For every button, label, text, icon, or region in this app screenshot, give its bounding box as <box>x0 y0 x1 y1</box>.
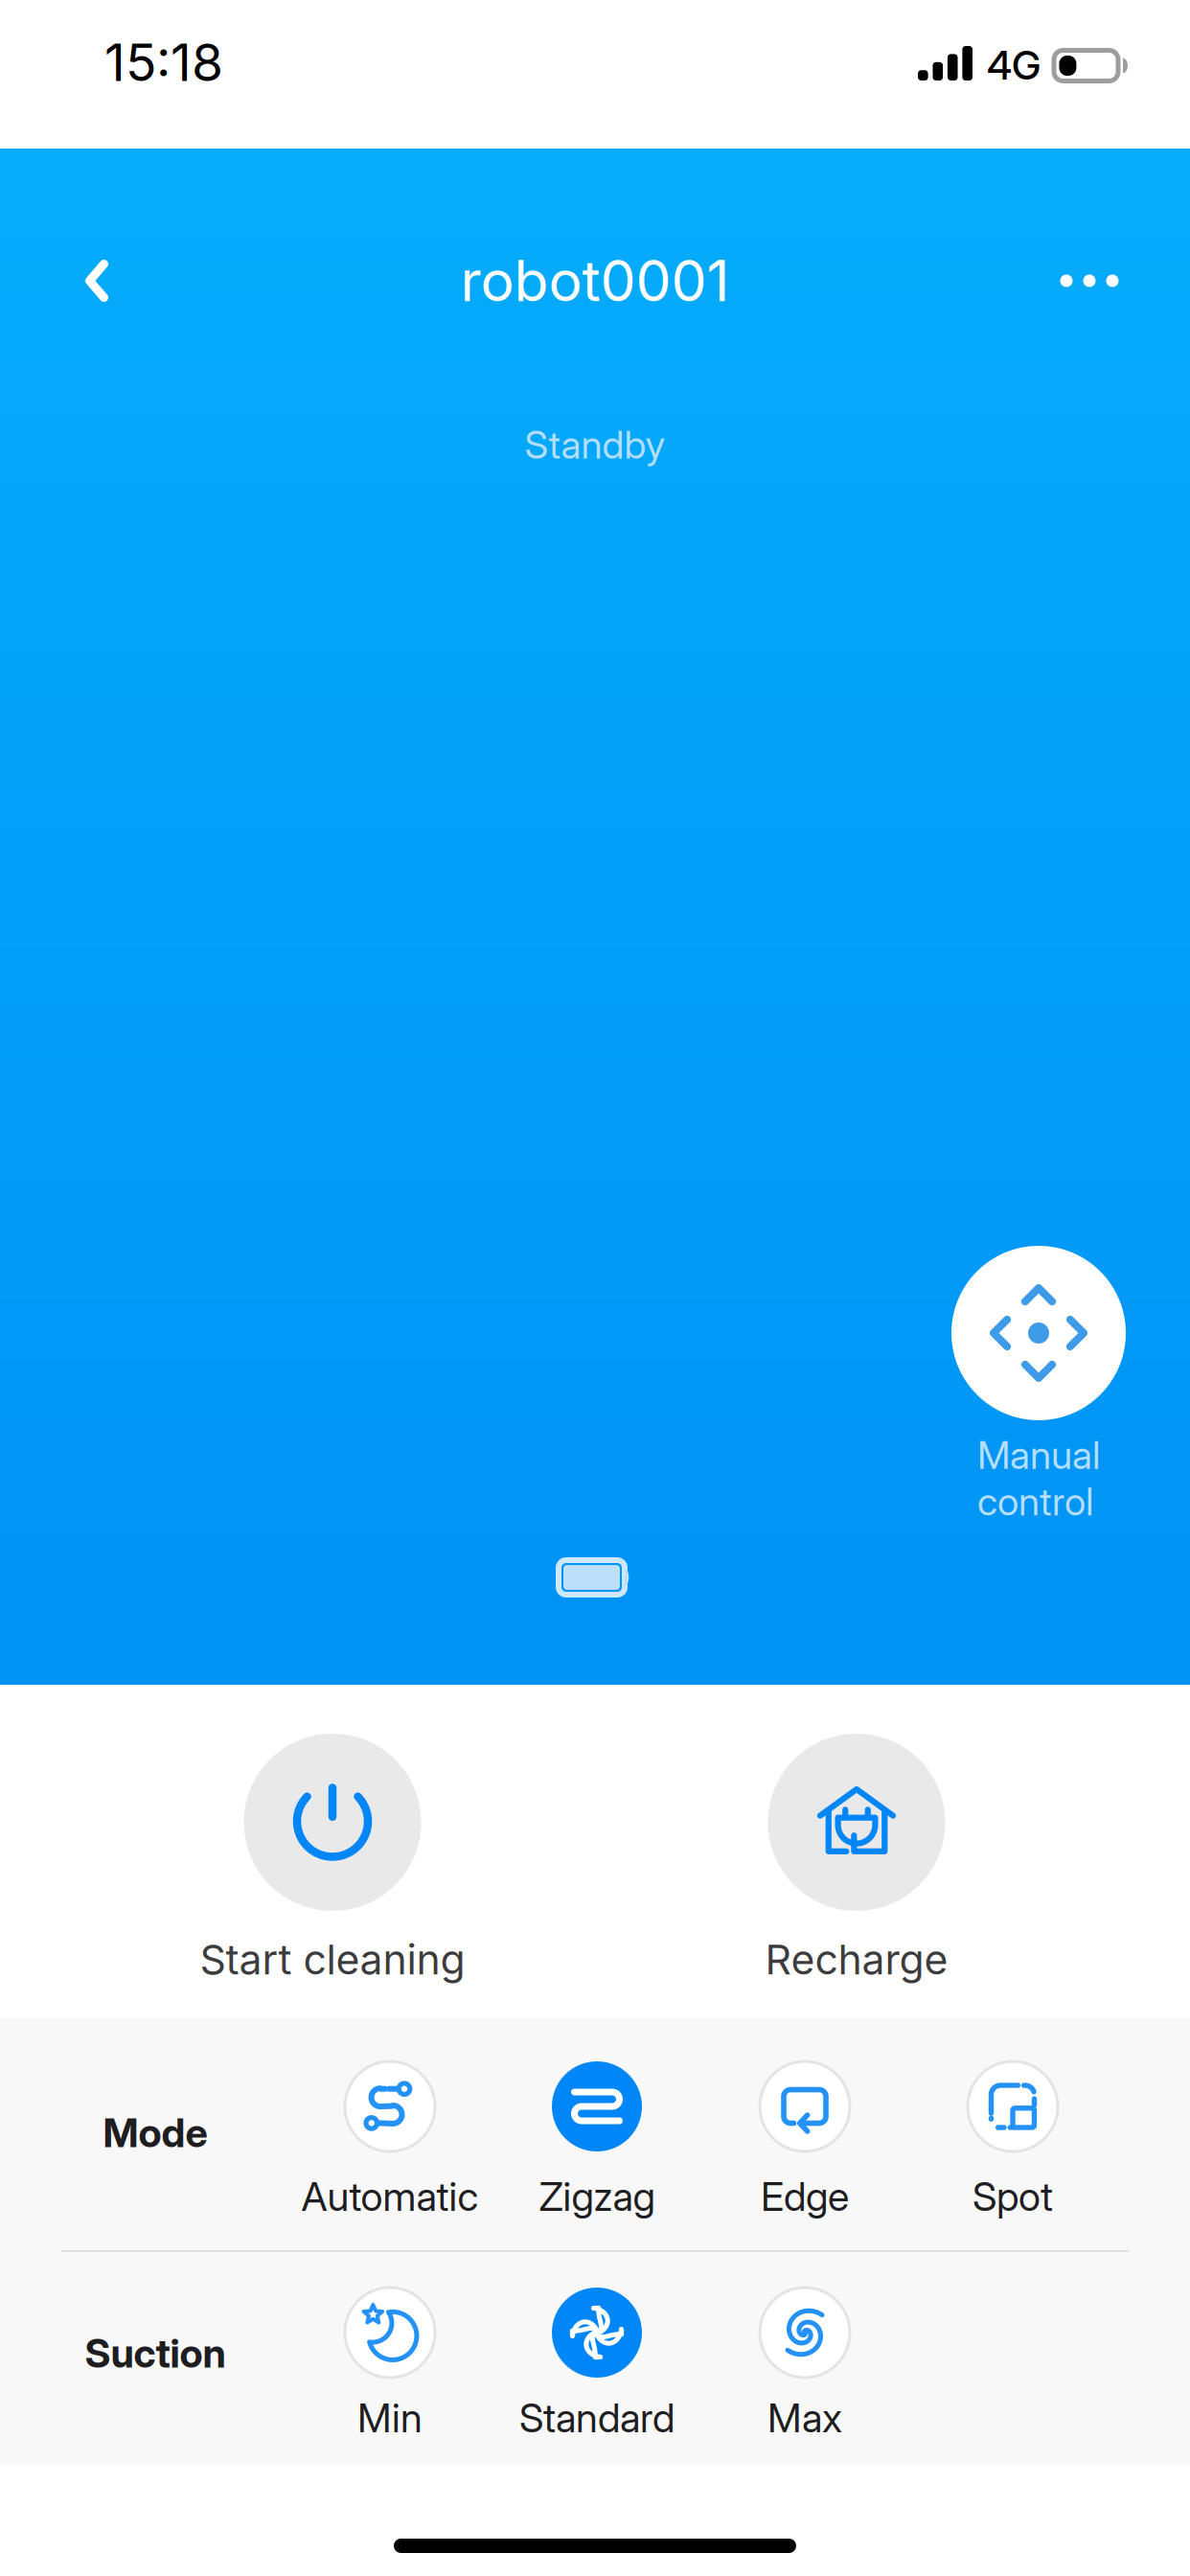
button[interactable]: Spot <box>968 2061 1058 2220</box>
button[interactable]: Manual control <box>921 1246 1156 1525</box>
staticText: Zigzag <box>539 2173 655 2220</box>
button[interactable]: Start cleaning <box>200 1734 465 1984</box>
staticText: Manual control <box>977 1432 1100 1525</box>
staticText: Spot <box>973 2173 1053 2220</box>
staticText: Automatic <box>301 2173 479 2220</box>
staticText: Max <box>767 2394 842 2442</box>
staticText: Min <box>357 2394 423 2442</box>
staticText: Start cleaning <box>200 1935 465 1984</box>
staticText: Standby <box>525 421 665 468</box>
button[interactable]: Automatic <box>301 2061 479 2220</box>
staticText: Standard <box>519 2394 675 2442</box>
staticText: Recharge <box>765 1935 948 1984</box>
button[interactable]: Max <box>760 2288 850 2442</box>
staticText: 4G <box>987 41 1041 89</box>
staticText: robot0001 <box>460 247 730 315</box>
button[interactable]: Min <box>345 2288 435 2442</box>
button[interactable]: Back <box>39 223 154 338</box>
staticText: 15:18 <box>104 31 223 93</box>
button[interactable]: Recharge <box>765 1734 948 1984</box>
button[interactable]: Zigzag <box>539 2061 655 2220</box>
staticText: Suction <box>85 2329 226 2377</box>
button[interactable]: More options <box>1027 228 1152 333</box>
button[interactable]: Standard <box>519 2288 675 2442</box>
staticText: Mode <box>103 2109 207 2157</box>
staticText: Edge <box>761 2173 849 2220</box>
button[interactable]: Edge <box>760 2061 850 2220</box>
